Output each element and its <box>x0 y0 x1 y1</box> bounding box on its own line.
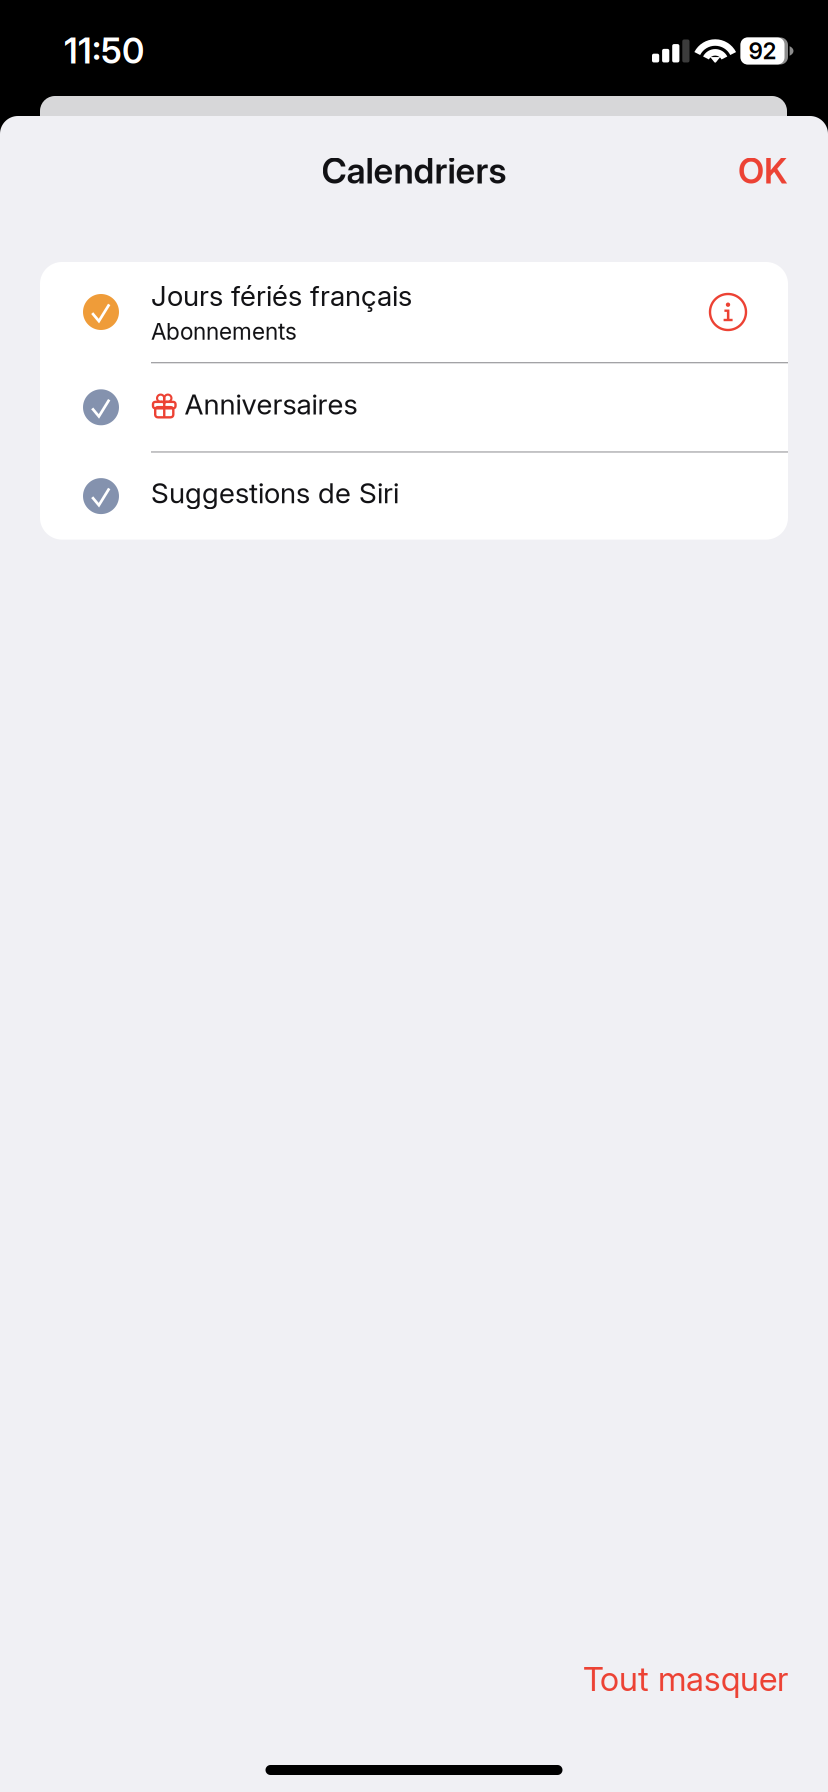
button[interactable]: Suggestions de Siri <box>40 453 788 540</box>
button[interactable]: Informations <box>688 294 788 330</box>
staticText: Anniversaires <box>184 387 357 421</box>
staticText: Jours fériés français <box>151 279 412 313</box>
button[interactable]: Anniversaires <box>40 363 788 451</box>
staticText: Calendriers <box>321 150 506 192</box>
staticText: Tout masquer <box>583 1659 788 1699</box>
staticText: Suggestions de Siri <box>151 476 399 510</box>
button[interactable]: Jours fériés français <box>40 262 788 362</box>
staticText: 92 <box>748 37 776 65</box>
button[interactable]: Tout masquer <box>563 1645 808 1713</box>
staticText: Abonnements <box>151 318 297 345</box>
staticText: OK <box>738 150 788 192</box>
button[interactable]: OK <box>720 138 806 204</box>
staticText: 11:50 <box>64 30 144 72</box>
